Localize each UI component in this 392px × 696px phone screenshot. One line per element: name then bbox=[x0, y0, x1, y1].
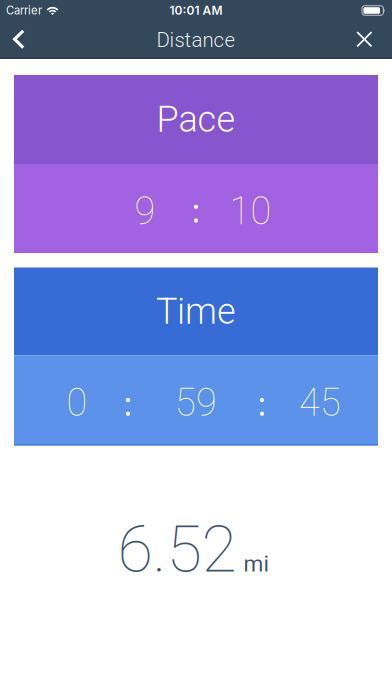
button[interactable]: Back bbox=[0, 20, 35, 58]
staticText: 59 bbox=[175, 380, 217, 425]
button[interactable]: Close bbox=[346, 21, 392, 57]
staticText: Time bbox=[156, 290, 236, 333]
staticText: 9 bbox=[134, 189, 155, 233]
staticText: 10:01 AM bbox=[169, 3, 222, 18]
staticText: 0 bbox=[66, 380, 87, 425]
staticText: Pace bbox=[156, 98, 235, 141]
staticText: Distance bbox=[156, 28, 235, 52]
staticText: 45 bbox=[299, 380, 341, 425]
staticText: mi bbox=[243, 550, 269, 577]
staticText: 6.52 bbox=[117, 511, 236, 587]
staticText: Carrier bbox=[6, 4, 42, 17]
staticText: 10 bbox=[229, 189, 271, 233]
